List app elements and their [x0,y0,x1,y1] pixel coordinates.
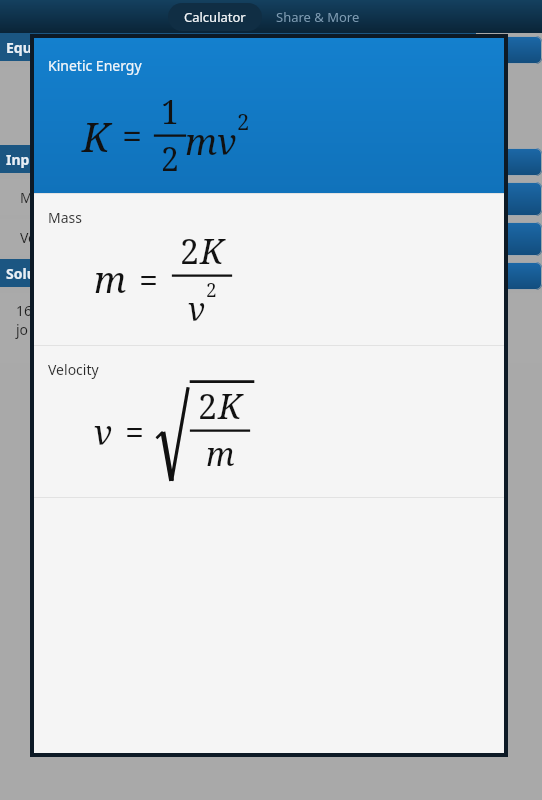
staticText: Velocity [48,360,99,379]
staticText: Kinetic Energy [48,56,142,75]
staticText: m [94,255,127,304]
staticText: v [94,409,113,455]
staticText: Velocity [20,228,71,247]
staticText: 2 [206,277,217,303]
button[interactable]: Edit value [482,148,542,176]
staticText: Share & More [276,8,360,26]
staticText: = [125,409,145,455]
staticText: K [200,228,224,274]
staticText: Mass [20,188,54,207]
staticText: Equation [6,38,69,57]
staticText: 2 [161,137,179,181]
staticText: K [218,383,242,429]
staticText: 2 [198,383,218,429]
staticText: 1 [161,90,179,134]
staticText: Calculator [184,8,246,26]
staticText: 2 [180,228,200,274]
staticText: m [206,432,235,476]
staticText: mv [185,117,237,166]
staticText: = [139,257,159,303]
staticText: Input [6,150,45,169]
button[interactable]: Edit value [482,222,542,256]
staticText: Solution [6,264,64,283]
staticText: K [82,109,110,163]
button[interactable]: Edit value [482,182,542,216]
button[interactable]: Velocity [34,346,504,497]
button[interactable]: Calculator [168,3,262,31]
staticText: 16 jo [16,301,33,339]
staticText: Mass [48,208,82,227]
button[interactable]: Mass [34,194,504,345]
button[interactable]: Edit value [482,36,542,64]
button[interactable]: Edit value [482,262,542,290]
staticText: v [188,287,206,331]
button[interactable]: Share & More [262,3,374,31]
staticText: 2 [237,106,250,136]
staticText: = [122,111,143,160]
